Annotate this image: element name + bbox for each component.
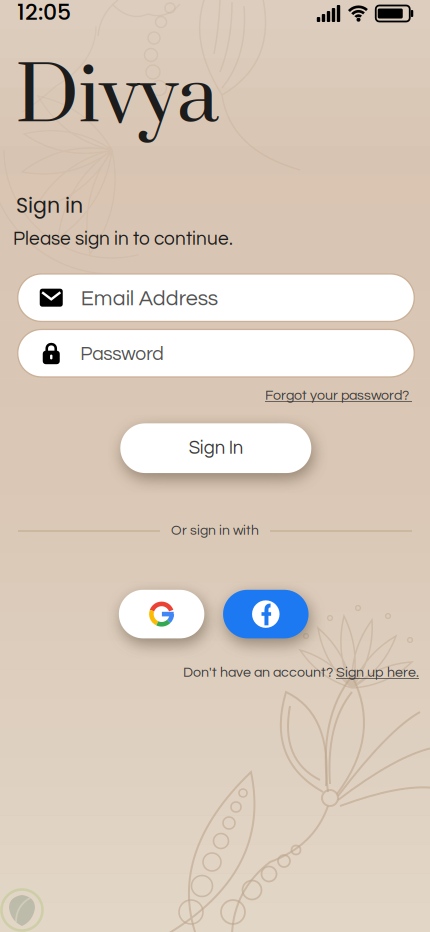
staticText: Password (80, 344, 163, 364)
staticText: Please sign in to continue. (13, 229, 233, 249)
staticText: Sign In (189, 439, 243, 458)
button[interactable]: Password (18, 329, 414, 377)
staticText: Or sign in with (171, 523, 259, 538)
button[interactable]: Sign in with Google (119, 590, 204, 638)
button[interactable]: Sign up here. (336, 665, 419, 680)
staticText: Forgot your password? (265, 388, 412, 403)
staticText: Divya (15, 48, 218, 148)
staticText: 12:05 (17, 0, 71, 27)
staticText: Email Address (81, 288, 218, 310)
staticText: Sign in (16, 191, 83, 220)
staticText: Don't have an account? (183, 665, 336, 680)
button[interactable]: Email Address (18, 274, 414, 321)
button[interactable]: Sign In (120, 423, 311, 473)
button[interactable]: Sign in with Facebook (223, 590, 309, 638)
staticText: Sign up here. (336, 665, 419, 680)
button[interactable]: Forgot your password? (265, 388, 412, 403)
